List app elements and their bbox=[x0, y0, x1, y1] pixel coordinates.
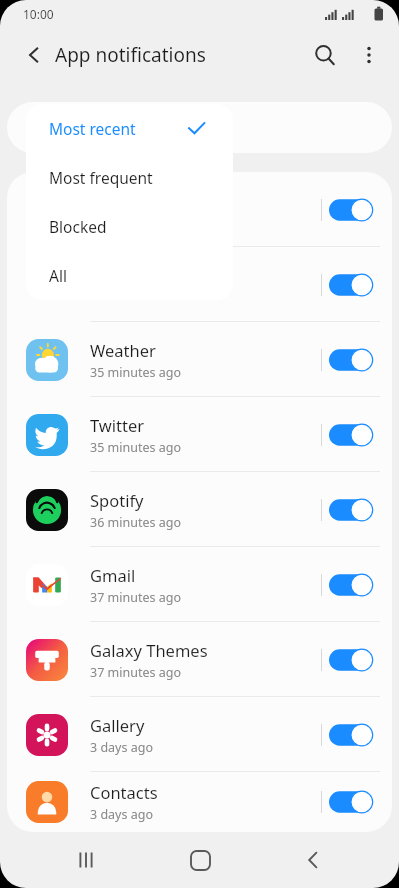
button[interactable]: Toggle notifications bbox=[329, 272, 373, 298]
button[interactable]: Toggle notifications bbox=[329, 497, 373, 523]
button[interactable]: Toggle notifications bbox=[329, 572, 373, 598]
button[interactable]: Gallery bbox=[7, 697, 392, 772]
staticText: 36 minutes ago bbox=[90, 514, 181, 531]
staticText: App notifications bbox=[55, 42, 206, 68]
button[interactable]: Search bbox=[303, 33, 347, 77]
staticText: Galaxy Themes bbox=[90, 639, 208, 661]
button[interactable]: Toggle notifications bbox=[329, 347, 373, 373]
button[interactable]: Toggle notifications bbox=[329, 422, 373, 448]
staticText: Spotify bbox=[90, 489, 144, 511]
button[interactable]: Contacts bbox=[7, 772, 392, 832]
button[interactable]: Toggle notifications bbox=[329, 647, 373, 673]
button[interactable] bbox=[7, 102, 392, 153]
staticText: All bbox=[49, 265, 67, 286]
staticText: Weather bbox=[90, 339, 156, 361]
button[interactable]: Most recent bbox=[26, 104, 233, 153]
staticText: Most frequent bbox=[49, 167, 153, 188]
staticText: Blocked bbox=[49, 216, 107, 237]
button[interactable]: Most frequent bbox=[26, 153, 233, 202]
staticText: Twitter bbox=[90, 414, 145, 436]
staticText: 3 days ago bbox=[90, 806, 153, 823]
staticText: Gmail bbox=[90, 564, 136, 586]
staticText: Most recent bbox=[49, 118, 136, 139]
staticText: Gallery bbox=[90, 714, 145, 736]
staticText: 35 minutes ago bbox=[90, 364, 181, 381]
staticText: Contacts bbox=[90, 781, 158, 803]
button[interactable]: Home bbox=[172, 832, 228, 888]
button[interactable]: Gmail bbox=[7, 547, 392, 622]
button[interactable]: Weather bbox=[7, 322, 392, 397]
staticText: 3 days ago bbox=[90, 739, 153, 756]
button[interactable]: Back bbox=[14, 35, 54, 75]
staticText: 35 minutes ago bbox=[90, 439, 181, 456]
button[interactable]: Toggle notifications bbox=[329, 722, 373, 748]
button[interactable]: All bbox=[26, 251, 233, 300]
button[interactable]: Toggle notifications bbox=[329, 789, 373, 815]
button[interactable]: Recents bbox=[58, 832, 114, 888]
button[interactable]: Back bbox=[285, 832, 341, 888]
button[interactable]: Blocked bbox=[26, 202, 233, 251]
button[interactable]: Toggle notifications bbox=[7, 172, 392, 247]
button[interactable]: More options bbox=[347, 33, 391, 77]
button[interactable]: Spotify bbox=[7, 472, 392, 547]
button[interactable]: Galaxy Themes bbox=[7, 622, 392, 697]
staticText: 37 minutes ago bbox=[90, 589, 181, 606]
button[interactable]: Twitter bbox=[7, 397, 392, 472]
staticText: 37 minutes ago bbox=[90, 664, 181, 681]
button[interactable]: Toggle notifications bbox=[7, 247, 392, 322]
button[interactable]: Toggle notifications bbox=[329, 197, 373, 223]
staticText: 10:00 bbox=[23, 6, 54, 22]
